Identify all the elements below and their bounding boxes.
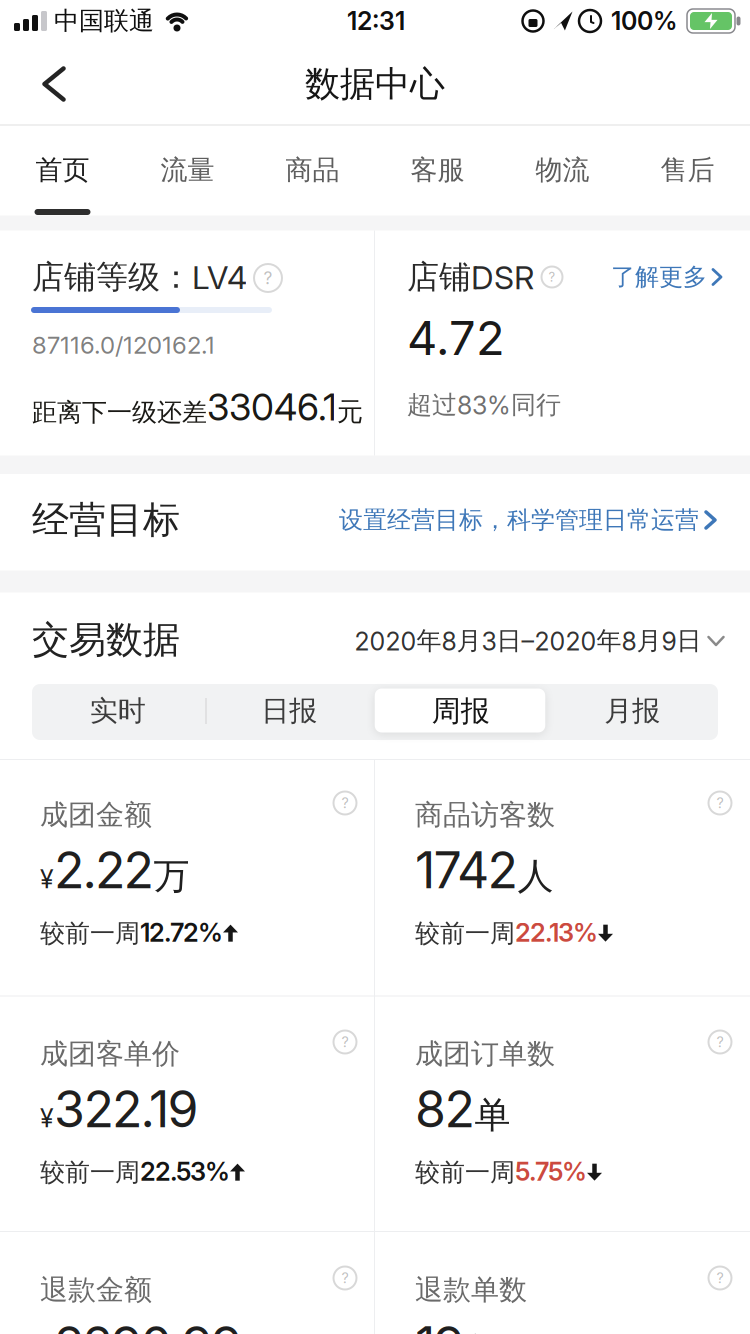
button[interactable]: 日报 xyxy=(204,683,374,739)
staticText: ? xyxy=(716,794,723,812)
staticText: 82 xyxy=(415,1079,474,1139)
staticText: ? xyxy=(716,1269,723,1287)
staticText: 距离下一级还差33046.1元 xyxy=(32,385,363,429)
staticText: 较前一周 xyxy=(40,918,140,949)
staticText: 物流 xyxy=(535,153,589,187)
staticText: 设置经营目标，科学管理日常运营 xyxy=(339,505,699,535)
button[interactable]: 客服 xyxy=(375,125,500,214)
button[interactable]: 帮助 xyxy=(541,266,562,287)
staticText: 12.72% xyxy=(140,917,223,948)
staticText: 单 xyxy=(474,1092,510,1138)
staticText: 流量 xyxy=(160,153,214,187)
staticText: 店铺等级：LV4 xyxy=(32,257,247,297)
staticText: ? xyxy=(341,1033,348,1051)
staticText: 成团金额 xyxy=(40,797,152,833)
staticText: 87116.0/120162.1 xyxy=(32,330,215,359)
button[interactable]: 帮助 xyxy=(333,791,356,814)
staticText: 19 xyxy=(415,1315,464,1334)
staticText: 1742 xyxy=(415,840,517,900)
staticText: 经营目标 xyxy=(32,497,180,543)
staticText: 客服 xyxy=(410,153,464,187)
button[interactable]: 2020年8月3日–2020年8月9日 xyxy=(354,625,723,657)
staticText: 日报 xyxy=(261,693,317,729)
staticText: 较前一周 xyxy=(415,1157,515,1188)
button[interactable]: 帮助 xyxy=(708,1030,731,1053)
button[interactable]: 帮助 xyxy=(708,791,731,814)
button[interactable]: 帮助 xyxy=(333,1266,356,1289)
staticText: ? xyxy=(341,1269,348,1287)
staticText: 5.75% xyxy=(515,1156,587,1187)
staticText: 成团客单价 xyxy=(40,1036,180,1072)
staticText: 周报 xyxy=(432,693,490,729)
staticText: ? xyxy=(716,1033,723,1051)
staticText: 中国联通 xyxy=(54,5,154,37)
staticText: 退款金额 xyxy=(40,1272,152,1308)
button[interactable]: 商品 xyxy=(250,125,375,214)
staticText: 首页 xyxy=(35,153,89,187)
button[interactable]: Back xyxy=(30,54,77,113)
staticText: 交易数据 xyxy=(32,617,180,663)
staticText: ¥ xyxy=(40,864,54,894)
staticText: 较前一周 xyxy=(415,918,515,949)
button[interactable]: 月报 xyxy=(547,683,717,739)
staticText: 人 xyxy=(517,853,553,899)
staticText: 100% xyxy=(611,6,677,36)
button[interactable]: 设置经营目标，科学管理日常运营 xyxy=(339,505,715,535)
button[interactable]: 售后 xyxy=(625,125,750,214)
staticText: 较前一周 xyxy=(40,1157,140,1188)
staticText: 2290.99 xyxy=(54,1315,242,1334)
staticText: 万 xyxy=(153,853,189,899)
staticText: ¥ xyxy=(40,1103,54,1133)
staticText: 了解更多 xyxy=(611,262,707,292)
staticText: ? xyxy=(341,794,348,812)
staticText: 商品访客数 xyxy=(415,797,555,833)
staticText: 商品 xyxy=(285,153,339,187)
button[interactable]: 首页 xyxy=(0,125,125,214)
staticText: 22.13% xyxy=(515,917,598,948)
staticText: ? xyxy=(548,269,555,285)
staticText: 售后 xyxy=(660,153,714,187)
button[interactable]: 帮助 xyxy=(333,1030,356,1053)
button[interactable]: 帮助 xyxy=(708,1266,731,1289)
staticText: 2.22 xyxy=(54,840,153,900)
staticText: 22.53% xyxy=(140,1156,230,1187)
button[interactable]: 物流 xyxy=(500,125,625,214)
staticText: 2020年8月3日–2020年8月9日 xyxy=(354,625,701,657)
staticText: 店铺DSR xyxy=(407,257,534,297)
staticText: ? xyxy=(263,267,272,288)
button[interactable]: 了解更多 xyxy=(611,262,721,292)
button[interactable]: 周报 xyxy=(376,683,546,739)
staticText: 成团订单数 xyxy=(415,1036,555,1072)
staticText: 退款单数 xyxy=(415,1272,527,1308)
staticText: 4.72 xyxy=(407,310,505,366)
staticText: 数据中心 xyxy=(305,62,445,106)
button[interactable]: 流量 xyxy=(125,125,250,214)
staticText: 12:31 xyxy=(347,6,405,36)
staticText: 超过83%同行 xyxy=(407,389,561,421)
button[interactable]: 实时 xyxy=(33,683,203,739)
staticText: 322.19 xyxy=(54,1079,198,1139)
staticText: 实时 xyxy=(90,693,146,729)
staticText: 月报 xyxy=(604,693,660,729)
button[interactable]: 帮助 xyxy=(254,264,282,292)
